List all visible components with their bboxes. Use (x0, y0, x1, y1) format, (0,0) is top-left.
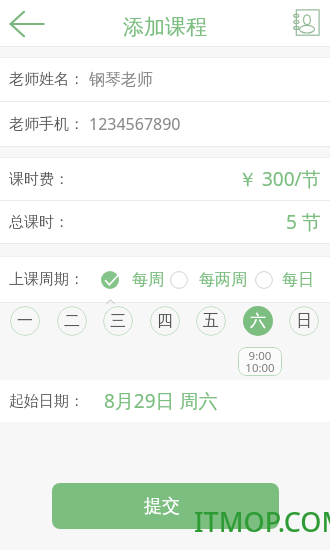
staticText: 钢琴老师 (89, 70, 153, 90)
staticText: 添加课程 (123, 14, 207, 40)
staticText: 老师姓名： (9, 70, 84, 89)
staticText: 三 (110, 311, 126, 331)
staticText: 起始日期： (9, 392, 84, 411)
staticText: 四 (157, 311, 173, 331)
button[interactable]: 六 (243, 306, 273, 336)
button[interactable]: 三 (103, 306, 133, 336)
button[interactable]: 每两周 (170, 270, 247, 290)
button[interactable]: 提交 (52, 483, 279, 529)
staticText: ITMOP.COM (194, 503, 330, 540)
staticText: 9:00 10:00 (245, 348, 275, 375)
staticText: 每日 (282, 270, 314, 290)
button[interactable]: 课时费： (0, 158, 330, 200)
staticText: 五 (203, 311, 219, 331)
button[interactable]: 老师姓名： (0, 58, 330, 101)
staticText: 老师手机： (9, 115, 84, 134)
button[interactable]: Back (7, 3, 47, 43)
staticText: 上课周期： (9, 270, 84, 289)
staticText: 二 (64, 311, 80, 331)
button[interactable]: 日 (289, 306, 319, 336)
staticText: 一 (17, 311, 33, 331)
staticText: 课时费： (9, 170, 69, 189)
button[interactable]: 一 (10, 306, 40, 336)
button[interactable]: 老师手机： (0, 102, 330, 146)
staticText: 提交 (144, 495, 180, 518)
button[interactable]: 9:00 10:00 (238, 347, 282, 376)
staticText: ￥ 300/节 (238, 166, 321, 192)
staticText: 5 节 (286, 209, 321, 235)
staticText: 8月29日 周六 (104, 388, 218, 414)
button[interactable]: 二 (57, 306, 87, 336)
button[interactable]: 总课时： (0, 201, 330, 243)
staticText: 每两周 (199, 270, 247, 290)
button[interactable]: 五 (196, 306, 226, 336)
staticText: 日 (296, 311, 312, 331)
button[interactable]: 每日 (255, 270, 314, 290)
button[interactable]: 每周 (101, 270, 164, 290)
staticText: 六 (250, 311, 266, 331)
button[interactable]: Contacts (285, 3, 325, 43)
button[interactable]: 起始日期： (0, 380, 330, 422)
staticText: 总课时： (9, 213, 69, 232)
staticText: 1234567890 (89, 113, 181, 135)
staticText: 每周 (132, 270, 164, 290)
button[interactable]: 四 (150, 306, 180, 336)
